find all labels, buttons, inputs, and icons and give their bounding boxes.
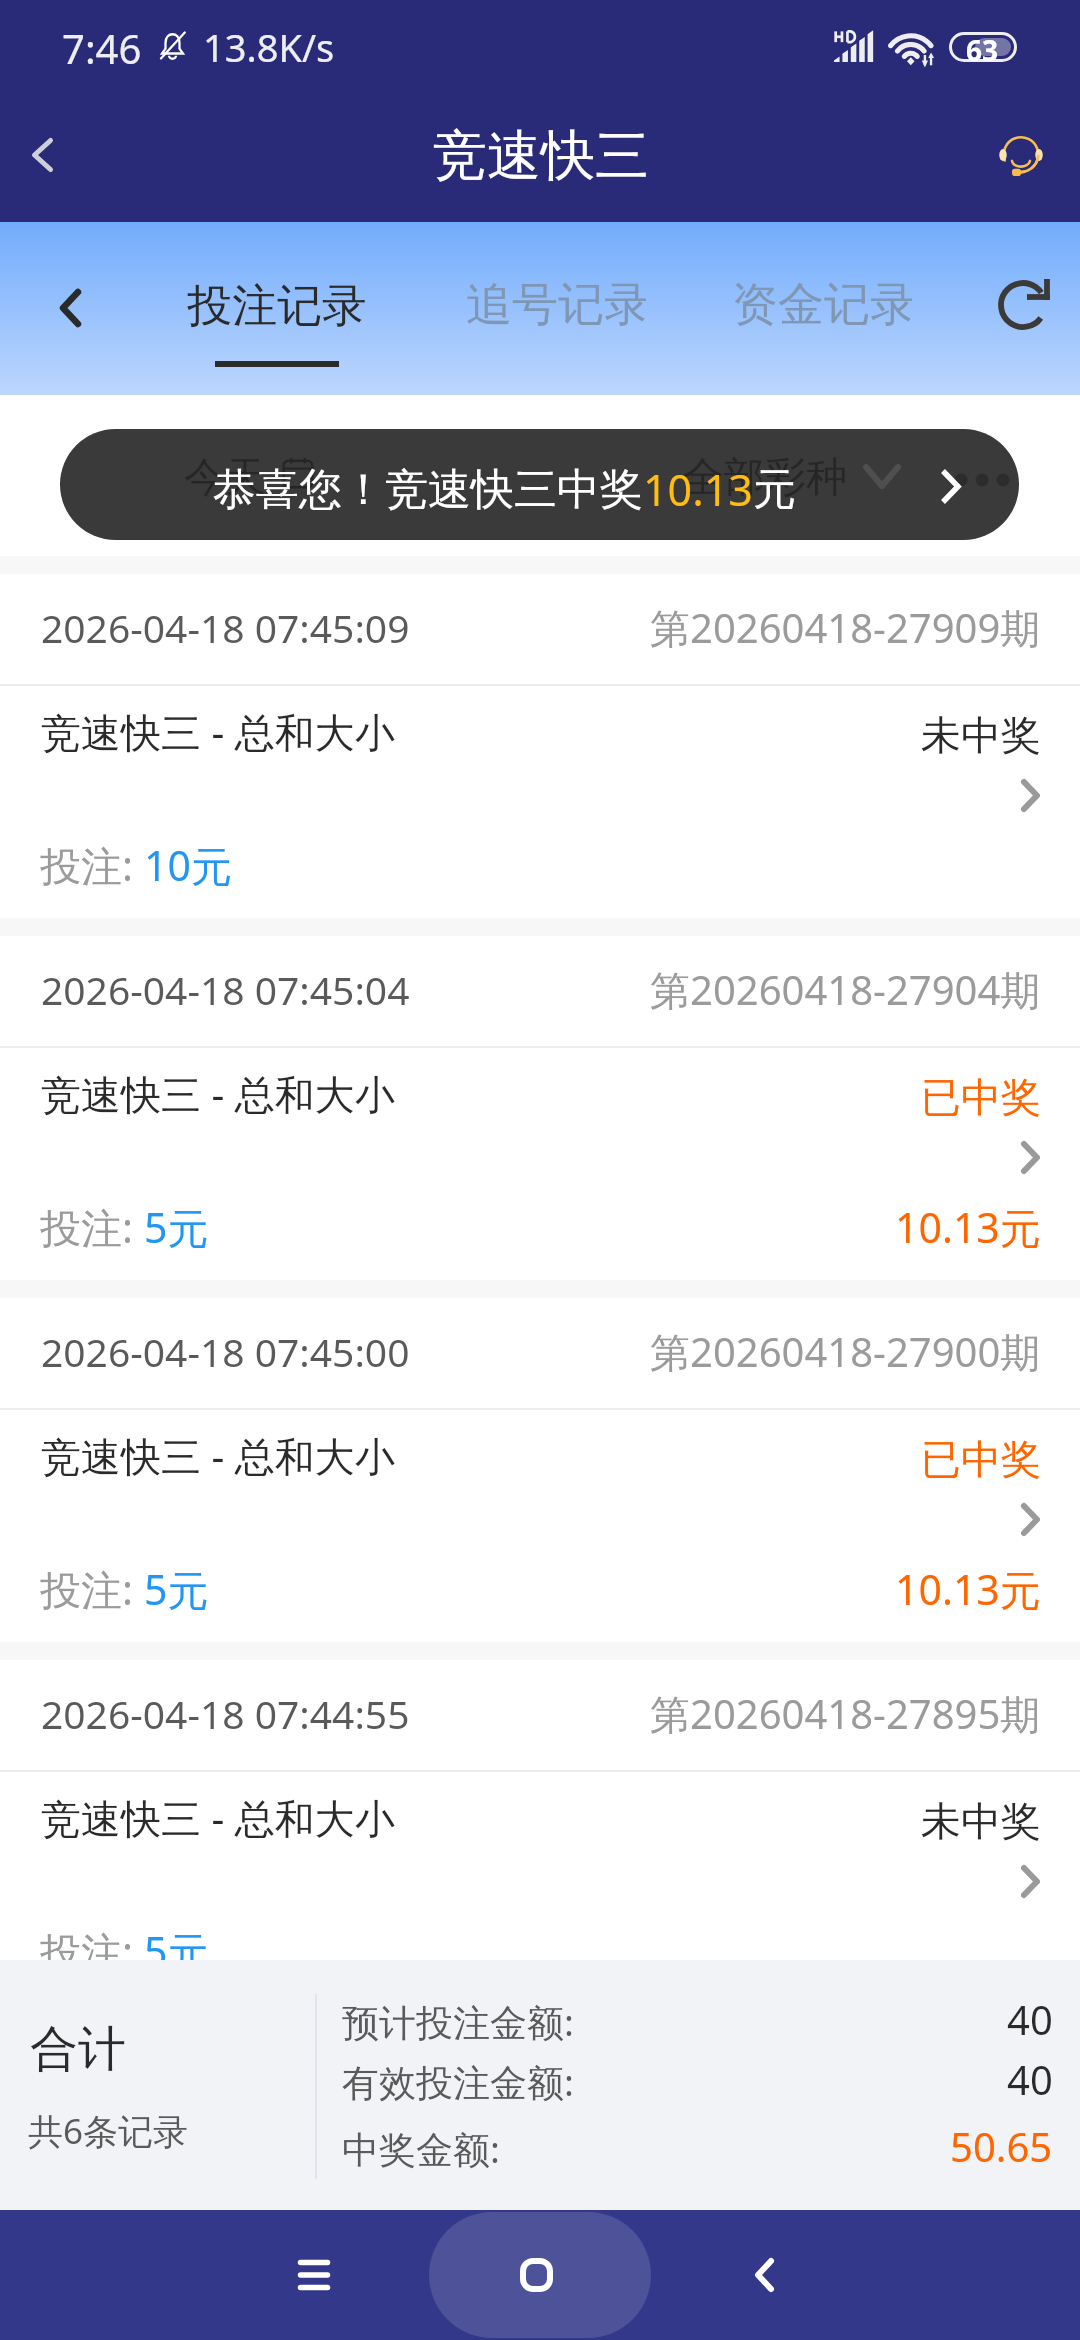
staticText: 第20260418-27904期 <box>650 962 1041 1017</box>
staticText: 竞速快三 - 总和大小 <box>41 704 395 759</box>
staticText: 10.13元 <box>895 1561 1041 1617</box>
button[interactable]: 全部彩种 <box>684 447 912 505</box>
staticText: 投注: <box>40 1199 144 1255</box>
staticText: 第20260418-27909期 <box>650 600 1041 655</box>
staticText: 10.13 <box>643 460 753 519</box>
staticText: 13.8K/s <box>203 21 335 73</box>
button[interactable]: More <box>941 461 1021 491</box>
staticText: 竞速快三 <box>433 122 649 190</box>
button[interactable]: 2026-04-18 07:45:04 <box>0 936 1080 1280</box>
staticText: 2026-04-18 07:45:00 <box>41 1325 410 1378</box>
button[interactable]: 2026-04-18 07:45:00 <box>0 1298 1080 1642</box>
staticText: 恭喜您！竞速快三中奖 <box>213 463 643 517</box>
staticText: 第20260418-27895期 <box>650 1686 1041 1741</box>
staticText: 未中奖 <box>921 710 1041 760</box>
staticText: 有效投注金额: <box>342 2056 574 2107</box>
staticText: 全部彩种 <box>683 452 847 504</box>
staticText: 10.13元 <box>895 1199 1041 1255</box>
staticText: 竞速快三 - 总和大小 <box>41 1066 395 1121</box>
staticText: 预计投注金额: <box>342 1996 574 2047</box>
staticText: 5元 <box>144 1199 209 1255</box>
staticText: 40 <box>1007 2052 1053 2106</box>
button[interactable]: 2026-04-18 07:45:09 <box>0 574 1080 918</box>
staticText: 投注: <box>40 1923 144 1979</box>
button[interactable]: Home <box>476 2210 596 2340</box>
staticText: 40 <box>1007 1992 1053 2046</box>
staticText: 投注: <box>40 1561 144 1617</box>
staticText: 63 <box>966 31 999 69</box>
button[interactable]: Refresh <box>974 265 1074 345</box>
button[interactable]: 资金记录 <box>732 272 912 338</box>
staticText: 投注记录 <box>187 278 367 335</box>
button[interactable]: 2026-04-18 07:44:55 <box>0 1660 1080 2004</box>
staticText: 资金记录 <box>732 276 912 334</box>
staticText: 10元 <box>144 837 232 893</box>
staticText: 2026-04-18 07:45:04 <box>41 963 410 1016</box>
staticText: 投注: <box>40 837 144 893</box>
staticText: 竞速快三 - 总和大小 <box>41 1428 395 1483</box>
button[interactable]: 今天 <box>186 447 322 505</box>
staticText: 2026-04-18 07:45:09 <box>41 601 410 654</box>
staticText: 7:46 <box>62 21 142 75</box>
staticText: 追号记录 <box>466 276 646 334</box>
button[interactable]: Back <box>20 268 120 348</box>
staticText: 今天 <box>184 452 266 504</box>
staticText: 元 <box>753 463 796 517</box>
button[interactable]: 投注记录 <box>176 260 376 376</box>
staticText: 5元 <box>144 1561 209 1617</box>
staticText: 未中奖 <box>921 1796 1041 1846</box>
button[interactable]: Back <box>0 105 84 205</box>
staticText: 中奖金额: <box>342 2123 500 2174</box>
button[interactable]: Recents <box>254 2210 374 2340</box>
button[interactable]: Back <box>704 2210 824 2340</box>
staticText: 第20260418-27900期 <box>650 1324 1041 1379</box>
staticText: 今天 <box>186 450 270 503</box>
staticText: 合计 <box>30 2019 126 2079</box>
staticText: 已中奖 <box>921 1072 1041 1122</box>
button[interactable]: Customer service <box>952 112 1080 222</box>
staticText: 已中奖 <box>921 1434 1041 1484</box>
staticText: 竞速快三 - 总和大小 <box>41 1790 395 1845</box>
button[interactable]: 追号记录 <box>466 272 646 338</box>
staticText: 5元 <box>144 1923 209 1979</box>
staticText: 50.65 <box>950 2119 1053 2173</box>
staticText: 全部彩种 <box>684 450 852 503</box>
staticText: 2026-04-18 07:44:55 <box>41 1687 410 1740</box>
staticText: 共6条记录 <box>28 2107 189 2155</box>
